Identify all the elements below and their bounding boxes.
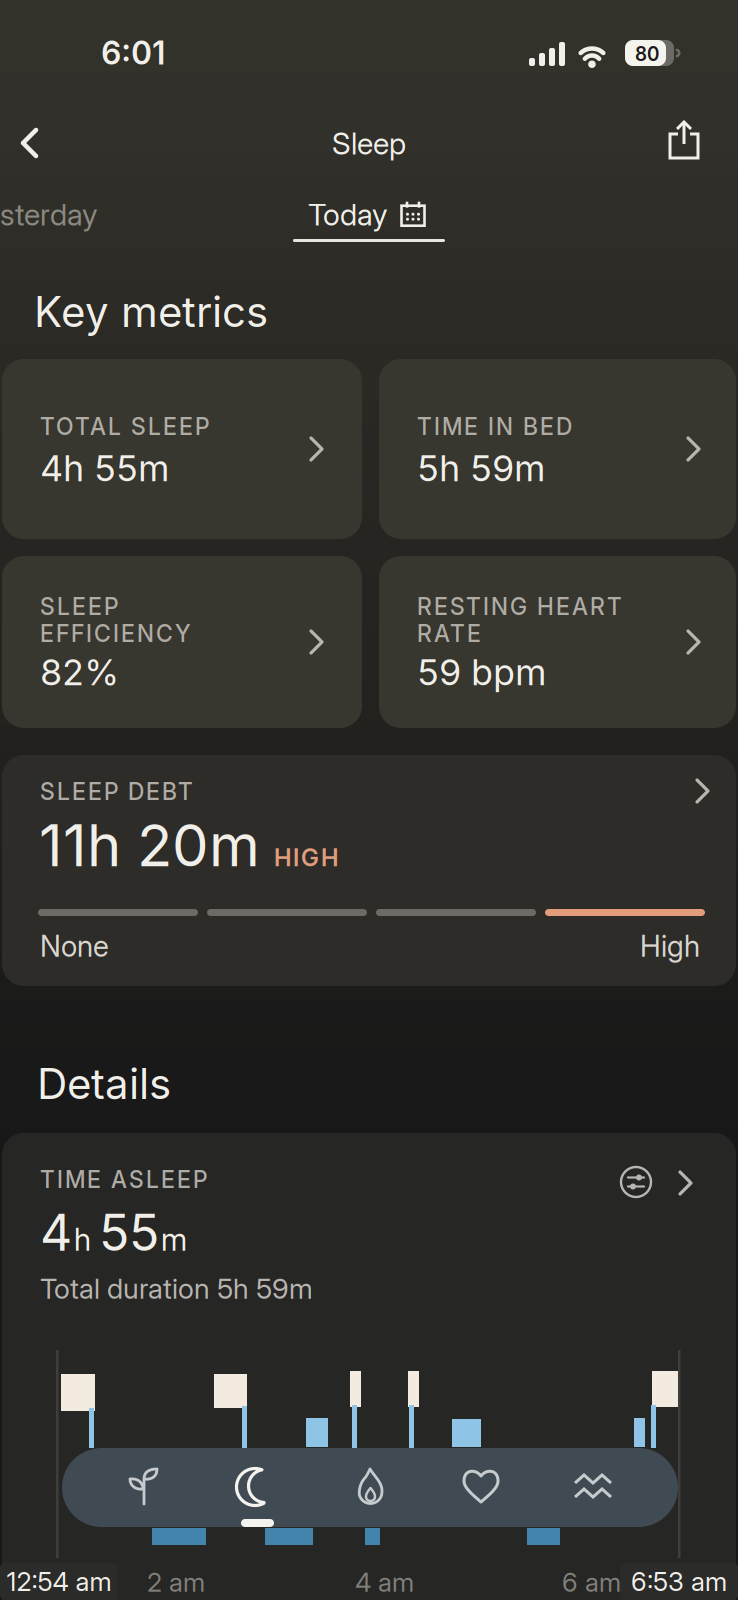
button[interactable]: 6:53 am	[620, 1563, 738, 1600]
staticText: SLEEP EFFICIENCY	[40, 593, 191, 647]
staticText: Key metrics	[34, 287, 268, 336]
staticText: Yesterday	[0, 197, 98, 232]
staticText: 59 bpm	[417, 651, 547, 693]
staticText: Total duration 5h 59m	[40, 1272, 313, 1305]
staticText: SLEEP DEBT	[40, 778, 193, 805]
button[interactable]: TIME ASLEEP	[2, 1133, 736, 1203]
staticText: 6:53 am	[631, 1566, 727, 1597]
staticText: RESTING HEART RATE	[417, 593, 622, 647]
button[interactable]: TOTAL SLEEP	[2, 359, 362, 539]
button[interactable]: Readiness	[109, 1451, 181, 1523]
staticText: Details	[37, 1059, 171, 1108]
staticText: HIGH	[274, 843, 338, 872]
staticText: 6 am	[562, 1567, 621, 1598]
staticText: TOTAL SLEEP	[40, 413, 209, 440]
staticText: None	[40, 929, 109, 963]
staticText: TIME ASLEEP	[40, 1166, 207, 1193]
staticText: 5h 59m	[417, 447, 546, 489]
staticText: High	[640, 929, 700, 963]
staticText: 55	[99, 1203, 159, 1262]
button[interactable]: Activity	[335, 1451, 407, 1523]
button[interactable]: TIME IN BED	[379, 359, 736, 539]
staticText: h	[74, 1221, 91, 1258]
button[interactable]: Stress	[557, 1451, 629, 1523]
button[interactable]: SLEEP DEBT	[2, 755, 736, 986]
staticText: 82%	[40, 651, 119, 693]
staticText: 6:01	[101, 34, 166, 72]
button[interactable]: Sleep	[221, 1451, 293, 1523]
staticText: 4	[40, 1203, 72, 1262]
staticText: m	[161, 1221, 187, 1258]
staticText: TIME IN BED	[417, 413, 572, 440]
staticText: 12:54 am	[6, 1566, 111, 1597]
button[interactable]: RESTING HEART RATE	[379, 556, 736, 728]
staticText: Sleep	[332, 126, 406, 161]
staticText: Today	[308, 197, 388, 232]
staticText: 4h 55m	[40, 447, 170, 489]
button[interactable]: Today	[308, 197, 426, 232]
staticText: 80	[635, 43, 659, 65]
button[interactable]: SLEEP EFFICIENCY	[2, 556, 362, 728]
staticText: 4 am	[355, 1567, 414, 1598]
button[interactable]: Heart	[445, 1451, 517, 1523]
staticText: 2 am	[147, 1567, 205, 1598]
staticText: 11h 20m	[39, 811, 260, 879]
button[interactable]: Share	[660, 112, 708, 168]
button[interactable]: 12:54 am	[0, 1563, 118, 1600]
button[interactable]: Back	[10, 117, 50, 169]
button[interactable]: Yesterday	[0, 197, 98, 232]
